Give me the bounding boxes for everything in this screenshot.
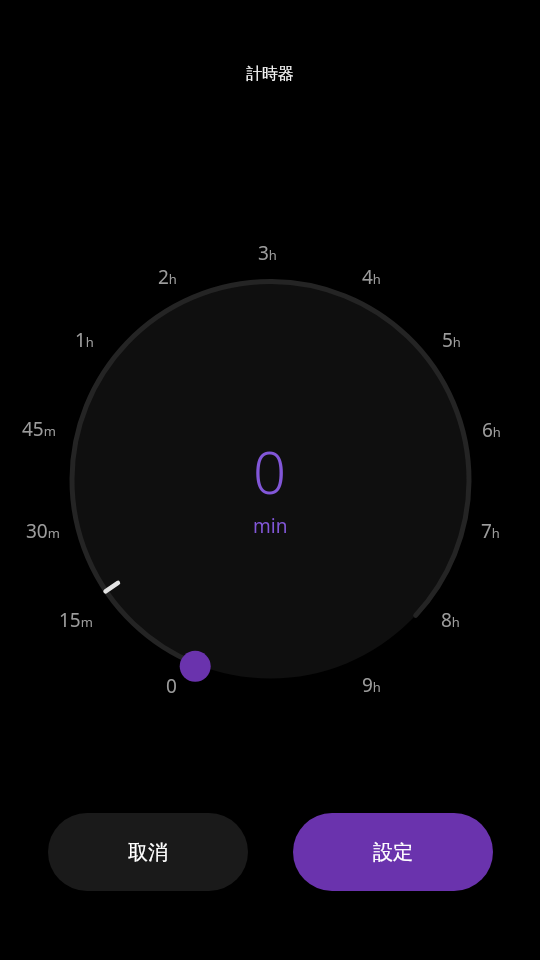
staticText: min (253, 513, 288, 539)
staticText: 4h (362, 264, 381, 290)
staticText: 取消 (128, 840, 168, 865)
staticText: 30m (26, 518, 60, 544)
staticText: 15m (59, 607, 93, 633)
staticText: 5h (442, 327, 461, 353)
staticText: 2h (158, 264, 177, 290)
staticText: 3h (258, 240, 277, 266)
button[interactable]: 設定 (293, 813, 493, 891)
staticText: 設定 (373, 840, 413, 865)
staticText: 1h (75, 327, 94, 353)
staticText: 8h (441, 607, 460, 633)
staticText: 45m (22, 416, 56, 442)
staticText: 6h (482, 417, 501, 443)
button[interactable]: 取消 (48, 813, 248, 891)
staticText: 9h (362, 672, 381, 698)
staticText: 0 (166, 673, 177, 699)
staticText: 0 (253, 432, 287, 511)
staticText: 7h (481, 518, 500, 544)
staticText: 計時器 (246, 64, 294, 84)
